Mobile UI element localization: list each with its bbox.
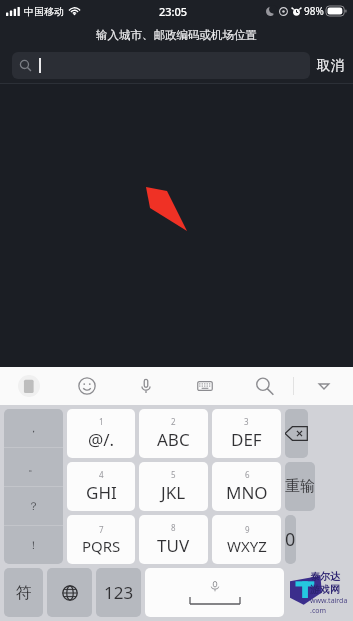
button[interactable]: 123 [96,568,141,617]
button[interactable]: ？ [4,487,63,525]
staticText: 123 [104,581,134,604]
staticText: ！ [28,538,39,552]
staticText: 泰尔达游戏网 [310,570,349,596]
staticText: WXYZ [227,536,267,556]
staticText: 2 [171,416,176,427]
staticText: 23:05 [159,4,188,19]
button[interactable]: Emoji [58,367,116,405]
staticText: 重输 [285,477,315,496]
staticText: PQRS [82,536,121,556]
button[interactable] [12,52,310,79]
staticText: TUV [157,534,190,557]
staticText: www.tairda.com [310,596,349,616]
staticText: 7 [99,524,104,535]
staticText: DEF [231,428,262,451]
button[interactable]: ！ [4,526,63,564]
button[interactable]: Change language [47,568,92,617]
staticText: @/. [88,428,115,451]
staticText: 6 [245,469,250,480]
button[interactable]: 3 [212,409,281,458]
button[interactable]: 取消 [317,57,344,74]
staticText: 9 [245,524,250,535]
staticText: 取消 [317,57,344,74]
staticText: 3 [244,416,249,427]
staticText: 符 [16,583,32,603]
button[interactable]: Hide keyboard [294,367,353,405]
staticText: 98% [304,4,324,18]
button[interactable]: 8 [139,515,208,564]
staticText: 。 [28,460,39,474]
button[interactable]: 9 [212,515,281,564]
staticText: JKL [161,481,186,504]
button[interactable]: 4 [67,462,135,511]
button[interactable]: Delete [285,409,308,458]
staticText: 输入城市、邮政编码或机场位置 [96,28,257,42]
button[interactable]: 7 [67,515,135,564]
staticText: 8 [171,522,176,533]
button[interactable]: 2 [139,409,208,458]
staticText: 1 [99,416,104,427]
staticText: ABC [157,428,190,451]
button[interactable]: Search [234,367,293,405]
staticText: MNO [226,481,268,504]
staticText: 5 [171,469,176,480]
button[interactable]: Voice input [116,367,175,405]
button[interactable]: 符号 [4,568,43,617]
button[interactable]: 5 [139,462,208,511]
button[interactable]: 1 [67,409,135,458]
staticText: 0 [285,527,296,552]
staticText: ？ [28,499,39,513]
button[interactable]: 6 [212,462,281,511]
staticText: 中国移动 [24,5,64,18]
staticText: ， [28,421,39,435]
button[interactable]: 重输 [285,462,315,511]
button[interactable]: Keyboard layout [175,367,234,405]
button[interactable]: Clipboard [0,367,58,405]
button[interactable]: 0 [285,515,296,564]
staticText: GHI [86,481,117,504]
button[interactable]: Space [145,568,284,617]
staticText: 4 [99,469,104,480]
